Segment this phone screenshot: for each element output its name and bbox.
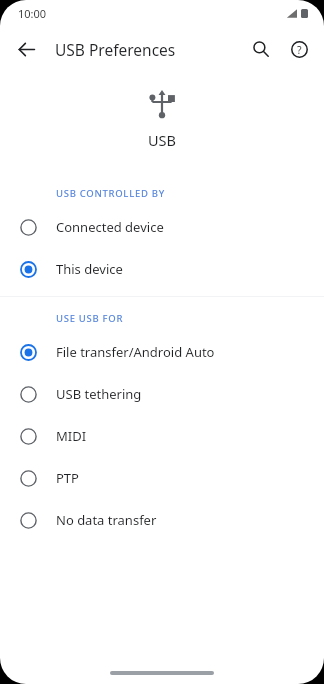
button[interactable]: Search xyxy=(242,30,280,68)
staticText: MIDI xyxy=(56,427,87,445)
staticText: USB CONTROLLED BY xyxy=(56,187,165,200)
button[interactable]: MIDI xyxy=(0,415,324,457)
staticText: No data transfer xyxy=(56,511,157,529)
staticText: USB xyxy=(148,130,176,150)
button[interactable]: Back xyxy=(6,29,46,69)
button[interactable]: PTP xyxy=(0,457,324,499)
button[interactable]: USB tethering xyxy=(0,373,324,415)
staticText: ? xyxy=(297,43,302,57)
staticText: Connected device xyxy=(56,218,164,236)
button[interactable]: This device xyxy=(0,248,324,290)
staticText: USB tethering xyxy=(56,385,142,403)
staticText: File transfer/Android Auto xyxy=(56,343,215,361)
button[interactable]: No data transfer xyxy=(0,499,324,541)
staticText: USB Preferences xyxy=(55,39,176,60)
button[interactable]: Help xyxy=(280,30,318,68)
staticText: This device xyxy=(56,260,123,278)
button[interactable]: File transfer/Android Auto xyxy=(0,331,324,373)
staticText: PTP xyxy=(56,469,79,487)
staticText: USE USB FOR xyxy=(56,312,124,325)
staticText: 10:00 xyxy=(18,6,47,21)
button[interactable]: Connected device xyxy=(0,206,324,248)
